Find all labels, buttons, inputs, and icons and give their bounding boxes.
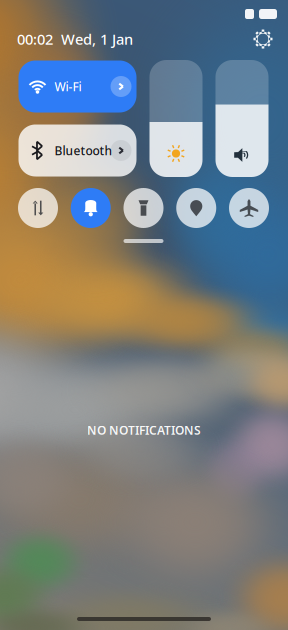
button[interactable]: Volume — [215, 60, 268, 177]
button[interactable]: Ring mode — [71, 188, 111, 228]
button[interactable]: Bluetooth — [18, 124, 136, 176]
button[interactable]: Settings — [247, 24, 279, 54]
staticText: Wi-Fi — [54, 78, 81, 94]
button[interactable]: Wi-Fi — [18, 60, 136, 112]
staticText: Bluetooth — [54, 142, 112, 158]
button[interactable]: Airplane mode — [229, 188, 269, 228]
staticText: 00:02 Wed, 1 Jan — [17, 29, 133, 49]
button[interactable]: Brightness — [149, 60, 202, 177]
button[interactable]: Flashlight — [123, 188, 163, 228]
staticText: NO NOTIFICATIONS — [87, 422, 201, 438]
button[interactable]: Location — [176, 188, 216, 228]
button[interactable]: Mobile data — [18, 188, 58, 228]
